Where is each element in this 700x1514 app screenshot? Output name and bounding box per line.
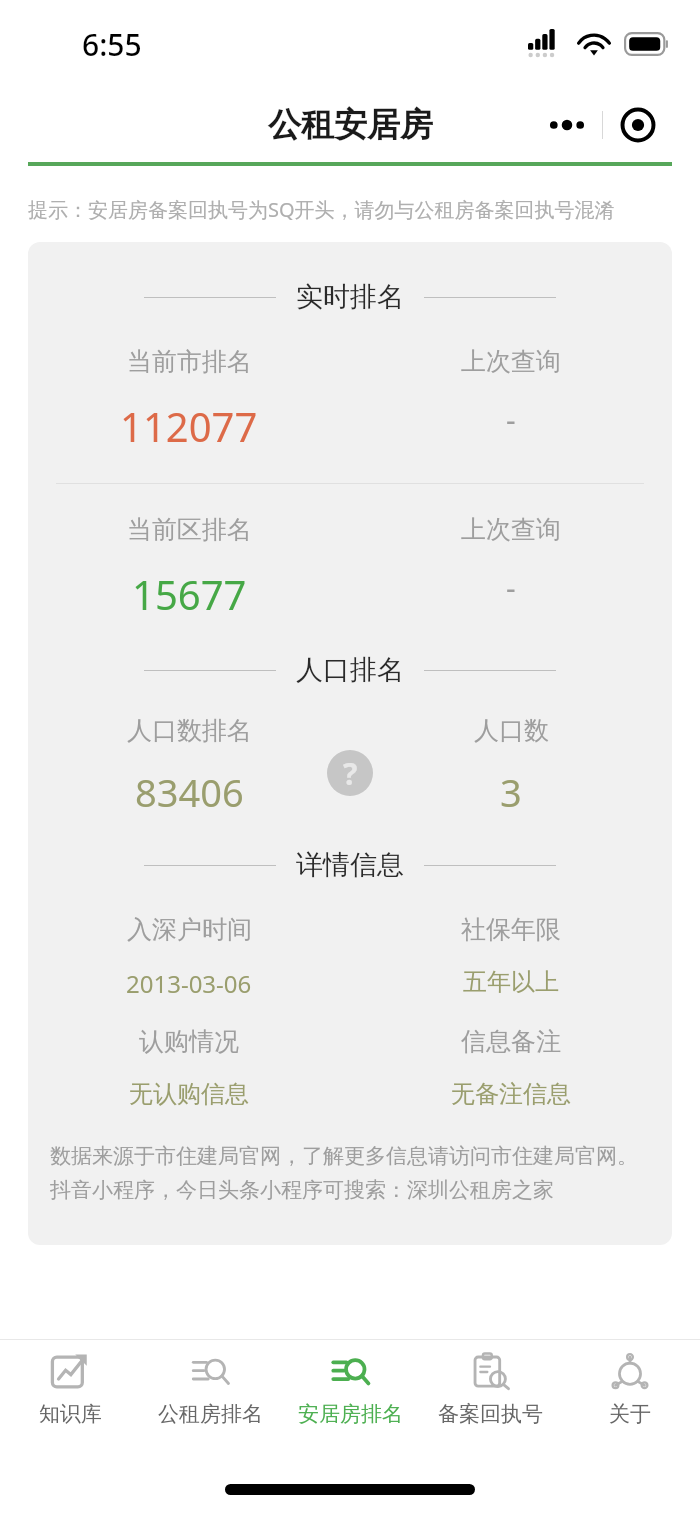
staticText: 15677 [132,567,247,621]
staticText: 详情信息 [296,848,404,882]
staticText: 知识库 [39,1401,102,1427]
staticText: 2013-03-06 [126,967,252,1000]
staticText: 上次查询 [461,346,561,377]
button[interactable]: 备案回执号 [420,1340,560,1436]
staticText: 当前区排名 [127,514,252,545]
staticText: ? [343,753,358,794]
staticText: 安居房排名 [298,1401,403,1427]
staticText: 112077 [120,399,258,453]
staticText: 关于 [609,1401,651,1427]
staticText: 人口数排名 [127,715,252,746]
staticText: 数据来源于市住建局官网，了解更多信息请访问市住建局官网。抖音小程序，今日头条小程… [50,1143,650,1203]
staticText: - [506,567,516,608]
staticText: 无备注信息 [451,1079,571,1109]
staticText: 提示：安居房备案回执号为SQ开头，请勿与公租房备案回执号混淆 [28,196,615,223]
staticText: 五年以上 [463,967,559,997]
staticText: 6:55 [82,24,142,65]
staticText: 信息备注 [461,1026,561,1057]
staticText: 人口排名 [296,653,404,687]
button[interactable]: Help [327,750,373,796]
staticText: 认购情况 [139,1026,239,1057]
staticText: 当前市排名 [127,346,252,377]
staticText: 上次查询 [461,514,561,545]
button[interactable]: 公租房排名 [140,1340,280,1436]
staticText: 公租房排名 [158,1401,263,1427]
button[interactable]: 关于 [560,1340,700,1436]
button[interactable]: 安居房排名 [280,1340,420,1436]
other: Close mini program [603,107,672,143]
staticText: 83406 [135,766,244,818]
staticText: 人口数 [474,715,549,746]
staticText: - [506,399,516,440]
staticText: 备案回执号 [438,1401,543,1427]
staticText: 3 [500,766,522,818]
staticText: 入深户时间 [127,914,252,945]
staticText: 公租安居房 [268,104,433,146]
button[interactable]: 知识库 [0,1340,140,1436]
other: More [532,117,602,133]
button[interactable]: More [532,98,672,152]
staticText: 社保年限 [461,914,561,945]
staticText: 实时排名 [296,280,404,314]
staticText: 无认购信息 [129,1079,249,1109]
